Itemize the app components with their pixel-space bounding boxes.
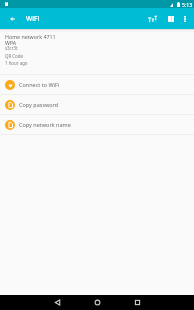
staticText: Copy password: [19, 101, 59, 108]
button[interactable]: Book view: [164, 8, 178, 29]
staticText: WiFi: [26, 14, 40, 23]
button[interactable]: More options: [175, 8, 194, 29]
staticText: 5:13: [182, 1, 193, 8]
staticText: QR Code: [5, 53, 23, 59]
button[interactable]: Back: [47, 295, 67, 310]
button[interactable]: Copy network name: [0, 115, 194, 134]
staticText: WPA: [5, 39, 17, 46]
button[interactable]: Home: [87, 295, 107, 310]
button[interactable]: Connect to WiFi: [0, 75, 194, 94]
staticText: Connect to WiFi: [19, 81, 60, 88]
staticText: 1 hour ago: [5, 60, 28, 66]
button[interactable]: Recent apps: [127, 295, 147, 310]
staticText: Copy network name: [19, 121, 71, 128]
button[interactable]: Copy password: [0, 95, 194, 114]
staticText: Home network 4711: [5, 33, 56, 40]
button[interactable]: Text size: [143, 8, 161, 29]
staticText: s3cr3t: [5, 45, 18, 51]
button[interactable]: Navigate up: [0, 8, 24, 29]
